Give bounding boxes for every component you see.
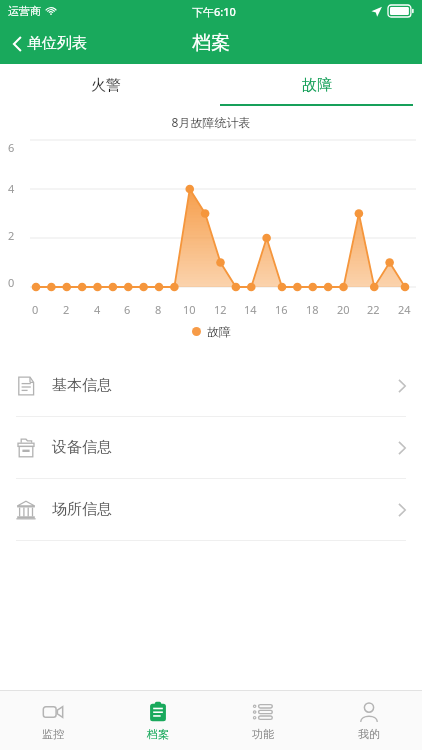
button[interactable]: 单位列表: [8, 28, 92, 59]
staticText: 14: [244, 302, 257, 317]
button[interactable]: 设备信息: [0, 417, 422, 478]
button[interactable]: Profile: [316, 691, 422, 750]
staticText: 8: [155, 302, 162, 317]
staticText: 8月故障统计表: [0, 114, 422, 130]
button[interactable]: 场所信息: [0, 479, 422, 540]
staticText: 档案: [192, 31, 230, 55]
staticText: 22: [367, 302, 380, 317]
staticText: 下午6:10: [192, 4, 236, 19]
staticText: 单位列表: [27, 34, 87, 53]
staticText: 4: [8, 181, 15, 196]
button[interactable]: 故障: [211, 64, 422, 106]
staticText: 运营商: [8, 4, 41, 18]
staticText: 4: [94, 302, 101, 317]
staticText: 18: [306, 302, 319, 317]
staticText: 基本信息: [52, 376, 112, 395]
staticText: 0: [32, 302, 39, 317]
staticText: 监控: [42, 727, 64, 741]
staticText: 功能: [252, 727, 274, 741]
staticText: 6: [124, 302, 131, 317]
staticText: 我的: [358, 727, 380, 741]
staticText: 24: [398, 302, 411, 317]
staticText: 20: [337, 302, 350, 317]
button[interactable]: 火警: [0, 64, 211, 106]
button[interactable]: Monitoring: [0, 691, 105, 750]
button[interactable]: Functions: [210, 691, 316, 750]
staticText: 设备信息: [52, 438, 112, 457]
staticText: 档案: [147, 727, 169, 741]
staticText: 0: [8, 275, 15, 290]
staticText: 2: [63, 302, 70, 317]
staticText: 故障: [302, 76, 332, 95]
staticText: 6: [8, 140, 15, 155]
staticText: 火警: [91, 76, 121, 95]
button[interactable]: 基本信息: [0, 355, 422, 416]
staticText: 故障: [207, 324, 231, 339]
staticText: 16: [275, 302, 288, 317]
staticText: 12: [214, 302, 227, 317]
staticText: 场所信息: [52, 500, 112, 519]
staticText: 10: [183, 302, 196, 317]
staticText: 2: [8, 228, 15, 243]
button[interactable]: Archive: [105, 691, 210, 750]
